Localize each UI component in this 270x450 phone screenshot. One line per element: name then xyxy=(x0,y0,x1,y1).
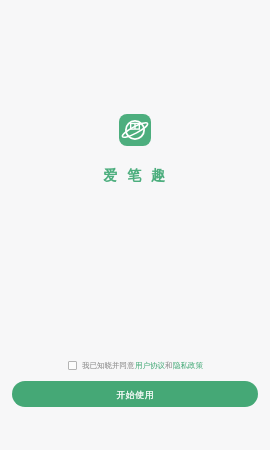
staticText: 爱 笔 趣 xyxy=(103,165,168,184)
staticText: 我已知晓并同意 xyxy=(82,361,135,370)
button[interactable]: 用户协议 xyxy=(135,361,165,370)
other: Agree checkbox xyxy=(68,361,77,370)
button[interactable]: Agree checkbox xyxy=(62,358,209,373)
staticText: 开始使用 xyxy=(116,389,154,400)
button[interactable]: 隐私政策 xyxy=(173,361,203,370)
staticText: 和 xyxy=(165,361,173,370)
button[interactable]: 开始使用 xyxy=(12,381,258,407)
